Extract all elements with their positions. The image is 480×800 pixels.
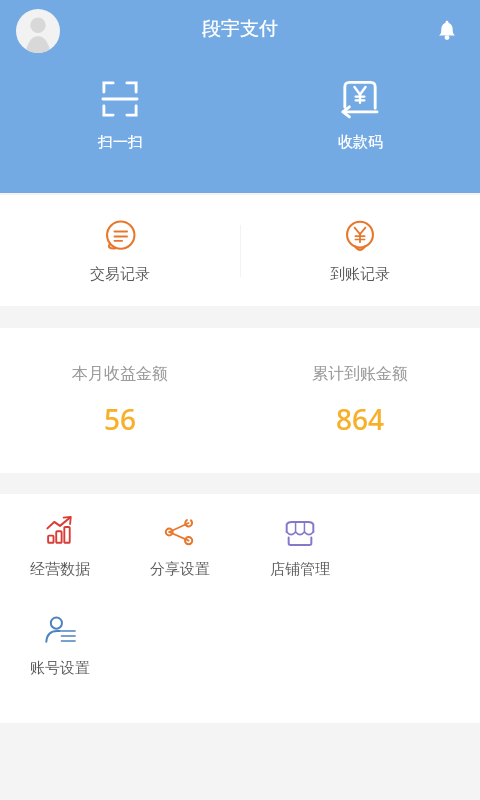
button[interactable]: 经营数据: [0, 512, 120, 581]
button[interactable]: 到账记录: [240, 195, 480, 306]
button[interactable]: 扫一扫: [0, 72, 240, 156]
staticText: 账号设置: [30, 659, 90, 678]
staticText: 到账记录: [330, 265, 390, 284]
button[interactable]: 分享设置: [120, 512, 240, 581]
button[interactable]: 交易记录: [0, 195, 240, 306]
staticText: 店铺管理: [270, 560, 330, 579]
button[interactable]: 收款码: [240, 72, 480, 156]
button[interactable]: Notifications: [428, 12, 466, 50]
button[interactable]: 本月收益金额: [0, 328, 240, 473]
staticText: 经营数据: [30, 560, 90, 579]
button[interactable]: Profile: [16, 9, 60, 53]
staticText: 分享设置: [150, 560, 210, 579]
staticText: 累计到账金额: [312, 364, 408, 384]
staticText: 交易记录: [90, 265, 150, 284]
staticText: 864: [336, 400, 385, 438]
button[interactable]: 店铺管理: [240, 512, 360, 581]
staticText: 56: [104, 400, 137, 438]
button[interactable]: 累计到账金额: [240, 328, 480, 473]
staticText: 本月收益金额: [72, 364, 168, 384]
staticText: 收款码: [338, 133, 383, 152]
staticText: 段宇支付: [202, 17, 278, 41]
button[interactable]: 账号设置: [0, 611, 120, 680]
staticText: 扫一扫: [98, 133, 143, 152]
